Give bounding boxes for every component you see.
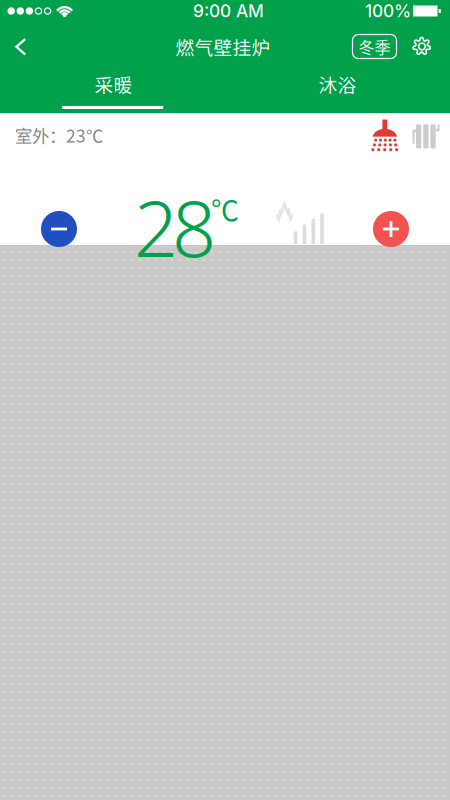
button[interactable]: 冬季: [352, 34, 396, 58]
button[interactable]: Decrease temperature: [41, 211, 77, 247]
button[interactable]: Settings: [405, 29, 439, 63]
staticText: 9:00 AM: [193, 0, 264, 21]
staticText: ℃: [211, 189, 239, 229]
button[interactable]: Radiator mode: [412, 124, 439, 149]
button[interactable]: Shower mode: [372, 119, 397, 152]
staticText: 冬季: [358, 35, 390, 58]
button[interactable]: Back: [1, 24, 41, 70]
staticText: 100%: [365, 0, 411, 21]
staticText: 采暖: [94, 70, 132, 97]
button[interactable]: 采暖: [0, 72, 225, 113]
staticText: 沐浴: [318, 70, 356, 97]
staticText: 燃气壁挂炉: [175, 33, 270, 60]
button[interactable]: 沐浴: [225, 72, 450, 113]
staticText: 室外：23℃: [15, 122, 103, 148]
staticText: 28: [134, 174, 216, 280]
button[interactable]: Increase temperature: [373, 211, 409, 247]
